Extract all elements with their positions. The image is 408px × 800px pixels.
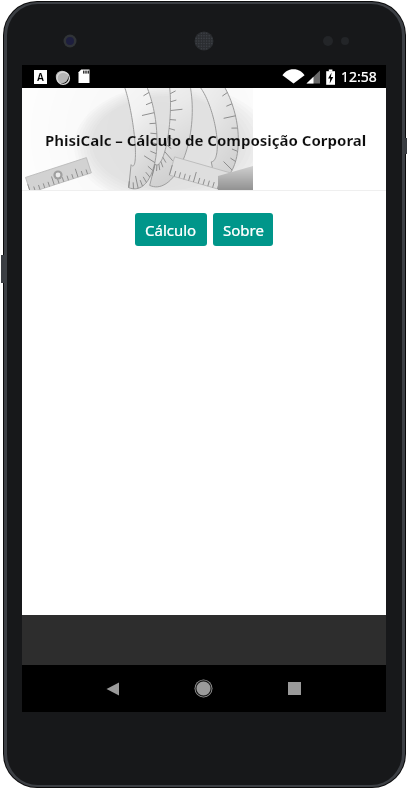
button[interactable]: Cálculo	[135, 213, 207, 246]
button[interactable]: Recent apps	[273, 667, 316, 710]
button[interactable]: Sobre	[213, 213, 273, 246]
button[interactable]: Home	[182, 667, 225, 710]
staticText: A	[37, 70, 44, 84]
staticText: Cálculo	[145, 220, 197, 240]
staticText: PhisiCalc – Cálculo de Composição Corpor…	[45, 130, 367, 150]
staticText: Sobre	[223, 220, 264, 240]
button[interactable]: Back	[91, 667, 134, 710]
staticText: 12:58	[341, 67, 377, 86]
